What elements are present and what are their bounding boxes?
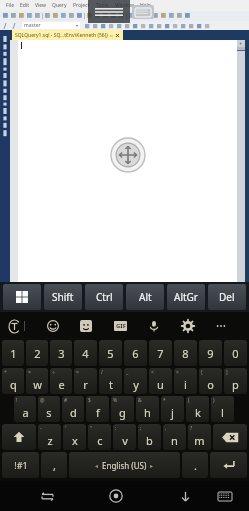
button[interactable] <box>176 12 184 20</box>
button[interactable]: Alt <box>126 284 164 310</box>
button[interactable]: 8 <box>174 340 197 366</box>
button[interactable]: !#1 <box>2 452 39 478</box>
button[interactable]: × <box>26 368 48 394</box>
button[interactable]: - <box>38 424 61 450</box>
button[interactable] <box>34 12 42 20</box>
button[interactable] <box>179 22 187 30</box>
button[interactable]: < <box>149 368 172 394</box>
button[interactable]: ! <box>14 396 36 422</box>
button[interactable]: ) <box>211 396 234 422</box>
button[interactable]: % <box>111 396 134 422</box>
button[interactable]: ÷ <box>50 368 72 394</box>
button[interactable] <box>168 12 176 20</box>
button[interactable]: 6 <box>124 340 147 366</box>
button[interactable] <box>139 22 147 30</box>
button[interactable]: Edit <box>17 2 32 9</box>
button[interactable] <box>128 12 136 20</box>
button[interactable]: Home <box>103 483 129 509</box>
button[interactable]: ( <box>186 396 209 422</box>
button[interactable]: 9 <box>199 340 222 366</box>
button[interactable] <box>123 22 131 30</box>
button[interactable]: SQLQuery1.sql - SQ...tEnv\Kenneth (56)) <box>12 30 123 40</box>
button[interactable]: Shift <box>44 284 82 310</box>
button[interactable] <box>203 22 211 30</box>
button[interactable]: Switch input method <box>34 483 60 509</box>
button[interactable]: Ctrl <box>85 284 123 310</box>
button[interactable] <box>68 12 76 20</box>
button[interactable] <box>131 22 139 30</box>
button[interactable]: " <box>88 424 111 450</box>
button[interactable] <box>195 22 203 30</box>
button[interactable]: , <box>41 452 67 478</box>
button[interactable]: ] <box>224 368 247 394</box>
button[interactable]: master <box>22 22 80 29</box>
button[interactable]: Show keyboard <box>132 5 154 19</box>
button[interactable]: More options <box>211 316 231 336</box>
button[interactable]: ? <box>188 424 211 450</box>
button[interactable]: Tools <box>93 2 112 9</box>
button[interactable]: Emoji <box>43 316 63 336</box>
button[interactable]: Hide keyboard <box>172 483 198 509</box>
button[interactable]: GIF <box>110 316 130 336</box>
button[interactable]: 1 <box>2 340 24 366</box>
button[interactable]: Translate <box>4 316 24 336</box>
button[interactable]: Help <box>137 2 154 9</box>
button[interactable] <box>155 22 163 30</box>
button[interactable]: / <box>99 368 122 394</box>
button[interactable] <box>136 12 144 20</box>
button[interactable] <box>163 22 171 30</box>
button[interactable] <box>26 12 34 20</box>
button[interactable]: Settings <box>178 316 198 336</box>
button[interactable] <box>44 12 52 20</box>
button[interactable] <box>60 12 68 20</box>
button[interactable]: $ <box>86 396 109 422</box>
button[interactable] <box>94 12 102 20</box>
button[interactable]: Shift <box>2 424 36 450</box>
button[interactable]: Window <box>112 2 137 9</box>
button[interactable]: Enter <box>210 452 247 478</box>
button[interactable]: ' <box>63 424 86 450</box>
button[interactable]: > <box>174 368 197 394</box>
button[interactable] <box>91 22 99 30</box>
button[interactable]: Project <box>70 2 93 9</box>
button[interactable] <box>107 22 115 30</box>
button[interactable]: 3 <box>50 340 72 366</box>
button[interactable]: @ <box>38 396 60 422</box>
button[interactable]: ; <box>138 424 161 450</box>
button[interactable]: Windows key <box>3 284 41 310</box>
button[interactable] <box>76 12 84 20</box>
button[interactable]: Query <box>49 2 70 9</box>
button[interactable]: Del <box>208 284 246 310</box>
button[interactable]: = <box>74 368 97 394</box>
button[interactable] <box>187 22 195 30</box>
button[interactable]: Backspace <box>213 424 247 450</box>
button[interactable] <box>110 12 118 20</box>
button[interactable] <box>144 12 152 20</box>
button[interactable]: ◂ <box>69 452 180 478</box>
button[interactable] <box>52 12 60 20</box>
button[interactable] <box>2 12 10 20</box>
button[interactable]: 7 <box>149 340 172 366</box>
button[interactable]: 5 <box>99 340 122 366</box>
button[interactable]: * <box>161 396 184 422</box>
button[interactable]: View <box>32 2 49 9</box>
button[interactable]: , <box>163 424 186 450</box>
button[interactable] <box>86 12 94 20</box>
button[interactable] <box>160 12 168 20</box>
button[interactable] <box>115 22 123 30</box>
button[interactable] <box>118 12 126 20</box>
button[interactable]: + <box>2 368 24 394</box>
button[interactable]: AltGr <box>167 284 205 310</box>
button[interactable]: & <box>136 396 159 422</box>
button[interactable] <box>184 12 192 20</box>
button[interactable]: 0 <box>224 340 247 366</box>
button[interactable]: 2 <box>26 340 48 366</box>
button[interactable] <box>102 12 110 20</box>
button[interactable]: 4 <box>74 340 97 366</box>
button[interactable] <box>147 22 155 30</box>
button[interactable]: Menu <box>88 0 130 23</box>
button[interactable]: _ <box>124 368 147 394</box>
button[interactable] <box>152 12 160 20</box>
button[interactable]: Voice input <box>144 316 164 336</box>
button[interactable] <box>83 22 91 30</box>
